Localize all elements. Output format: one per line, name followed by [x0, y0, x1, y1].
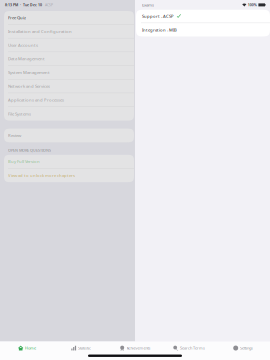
staticText: System Management	[8, 69, 50, 75]
button[interactable]: System Management	[4, 66, 134, 79]
staticText: Buy Full Version	[8, 158, 40, 164]
staticText: Network and Services	[8, 83, 50, 89]
staticText: Installation and Configuration	[8, 28, 72, 34]
staticText: Search Terms	[180, 345, 205, 351]
button[interactable]: Search Terms	[162, 342, 216, 355]
staticText: Achievements	[126, 345, 150, 351]
button[interactable]: Data Management	[4, 52, 134, 66]
button[interactable]: File Systems	[4, 107, 134, 121]
staticText: View ad to unlock more chapters	[8, 172, 75, 178]
staticText: User Accounts	[8, 42, 38, 48]
staticText: Data Management	[8, 56, 45, 61]
button[interactable]: Settings	[216, 342, 270, 355]
button[interactable]: Support - ACSP	[136, 10, 270, 23]
button[interactable]: Home	[0, 342, 54, 355]
button[interactable]: Applications and Processes	[4, 93, 134, 107]
staticText: ACSP	[42, 3, 53, 7]
button[interactable]: Installation and Configuration	[4, 25, 134, 38]
button[interactable]: Statistic	[54, 342, 108, 355]
button[interactable]: Free Quiz	[4, 11, 134, 25]
staticText: Free Quiz	[8, 15, 26, 20]
staticText: Review	[8, 133, 21, 138]
staticText: File Systems	[8, 111, 31, 117]
button[interactable]: View ad to unlock more chapters	[4, 168, 134, 182]
button[interactable]: Achievements	[108, 342, 162, 355]
button[interactable]: User Accounts	[4, 38, 134, 52]
staticText: Settings	[240, 345, 253, 351]
staticText: Support - ACSP	[142, 13, 174, 19]
staticText: Statistic	[78, 345, 91, 351]
staticText: Integration - MIB	[142, 27, 177, 33]
staticText: 8:13 PM · Tue Dec 10	[5, 3, 42, 7]
button[interactable]: Buy Full Version	[4, 155, 134, 168]
button[interactable]: Review	[4, 129, 134, 142]
staticText: OPEN MORE QUESTIONS	[8, 148, 51, 153]
staticText: Exams	[142, 2, 154, 8]
staticText: Home	[25, 345, 36, 351]
staticText: 100%	[248, 3, 257, 7]
button[interactable]: Integration - MIB	[136, 23, 270, 36]
button[interactable]: Network and Services	[4, 79, 134, 93]
staticText: Applications and Processes	[8, 97, 64, 103]
